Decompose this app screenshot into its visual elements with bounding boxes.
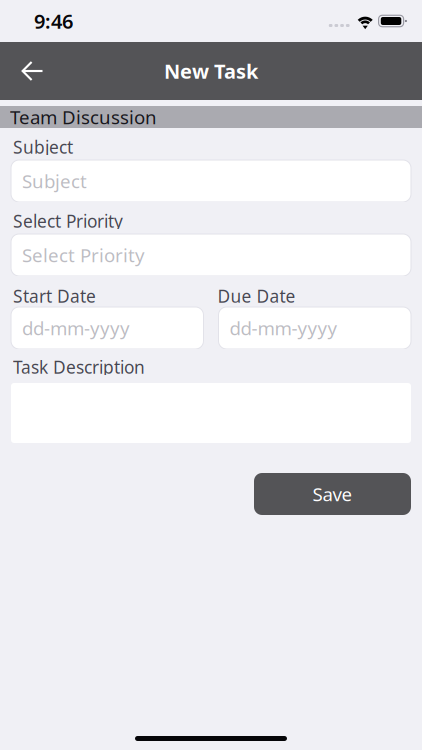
button[interactable]: dd-mm-yyyy (11, 307, 203, 349)
button[interactable]: Subject (11, 160, 411, 202)
staticText: Select Priority (13, 209, 123, 232)
staticText: Start Date (13, 284, 96, 307)
button[interactable]: Back (9, 47, 57, 95)
staticText: Save (312, 482, 352, 506)
button[interactable]: Save (254, 473, 411, 515)
button[interactable]: Select Priority (11, 234, 411, 276)
staticText: dd-mm-yyyy (229, 316, 337, 340)
staticText: Subject (22, 169, 87, 193)
button[interactable]: dd-mm-yyyy (218, 307, 411, 349)
staticText: Select Priority (22, 243, 145, 267)
staticText: dd-mm-yyyy (22, 316, 130, 340)
staticText: Due Date (217, 284, 295, 307)
staticText: New Task (164, 58, 258, 84)
staticText: Team Discussion (10, 105, 157, 129)
staticText: Subject (13, 135, 73, 158)
staticText: 9:46 (34, 8, 73, 34)
staticText: Task Description (13, 355, 145, 378)
